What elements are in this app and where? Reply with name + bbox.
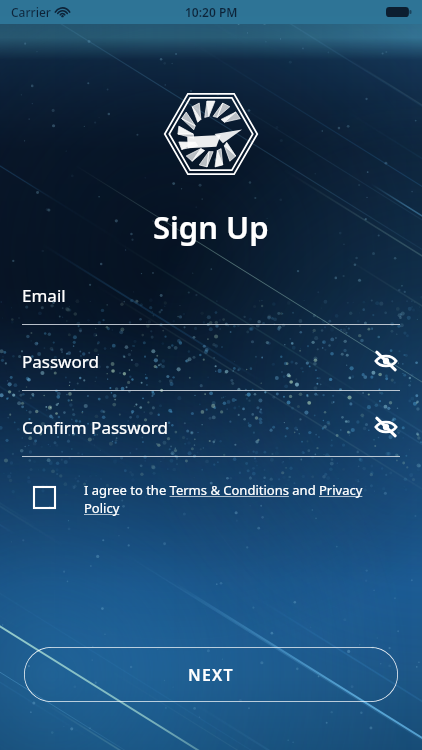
button[interactable]: Password [22,346,400,391]
staticText: Confirm Password [22,416,168,439]
button[interactable]: Email [22,280,400,325]
staticText: Sign Up [153,206,269,248]
button[interactable]: Agree to terms and conditions [34,487,55,508]
staticText: 10:20 PM [185,4,238,20]
staticText: Carrier [11,4,51,20]
button[interactable]: Confirm Password [22,412,400,457]
button[interactable]: NEXT [24,647,398,702]
button[interactable]: Toggle password visibility [372,347,400,375]
staticText: NEXT [188,664,234,686]
button[interactable]: Toggle password visibility [372,413,400,441]
staticText: I agree to the Terms & Conditions and Pr… [84,481,374,517]
staticText: Password [22,350,99,373]
button[interactable]: Agree to terms and conditions [22,481,400,517]
staticText: Email [22,284,66,307]
other: App logo [163,86,259,182]
